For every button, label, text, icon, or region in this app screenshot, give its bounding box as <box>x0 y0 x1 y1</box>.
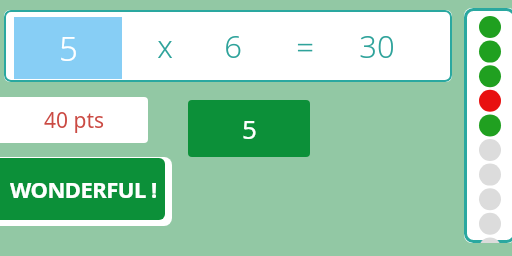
button[interactable]: 5 <box>188 100 310 157</box>
staticText: = <box>296 25 314 67</box>
staticText: 6 <box>224 25 242 67</box>
button[interactable]: 5 <box>4 10 452 82</box>
staticText: 5 <box>59 26 78 71</box>
staticText: x <box>157 25 173 67</box>
button[interactable]: 40 pts <box>0 97 148 143</box>
button[interactable]: WONDERFUL ! <box>0 157 172 226</box>
staticText: WONDERFUL ! <box>10 174 157 204</box>
staticText: 40 pts <box>44 106 105 135</box>
staticText: 5 <box>242 111 257 146</box>
button[interactable]: Progress <box>464 8 512 243</box>
staticText: 30 <box>359 25 395 67</box>
button[interactable]: 5 <box>14 17 122 79</box>
